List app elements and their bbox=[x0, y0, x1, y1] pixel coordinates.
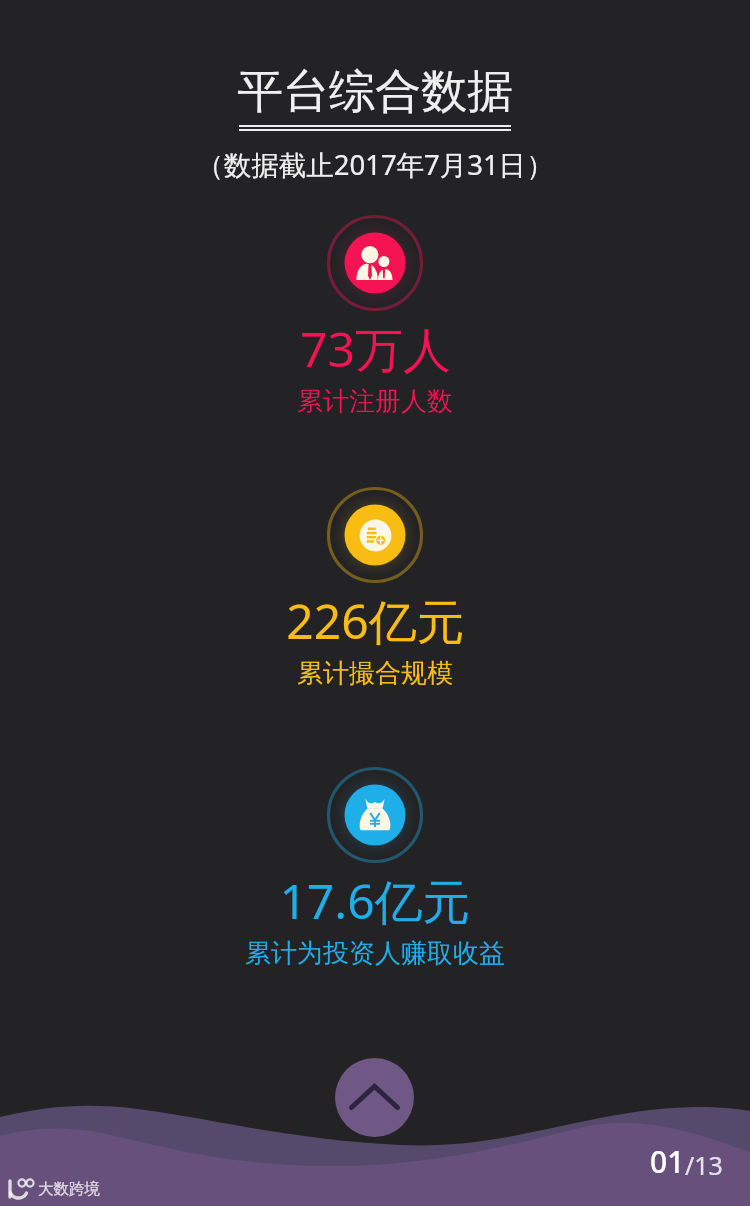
button[interactable]: Scroll up bbox=[335, 1058, 414, 1137]
staticText: 累计撮合规模 bbox=[297, 657, 453, 690]
staticText: 73万人 bbox=[300, 316, 451, 382]
staticText: 平台综合数据 bbox=[237, 63, 513, 121]
staticText: 累计注册人数 bbox=[297, 385, 453, 418]
staticText: 累计为投资人赚取收益 bbox=[245, 937, 505, 970]
staticText: （数据截止2017年7月31日） bbox=[196, 146, 554, 184]
staticText: 226亿元 bbox=[286, 588, 465, 654]
staticText: 大数跨境 bbox=[38, 1179, 100, 1199]
staticText: /13 bbox=[685, 1148, 723, 1182]
staticText: 17.6亿元 bbox=[279, 868, 471, 934]
staticText: 01 bbox=[650, 1141, 685, 1182]
